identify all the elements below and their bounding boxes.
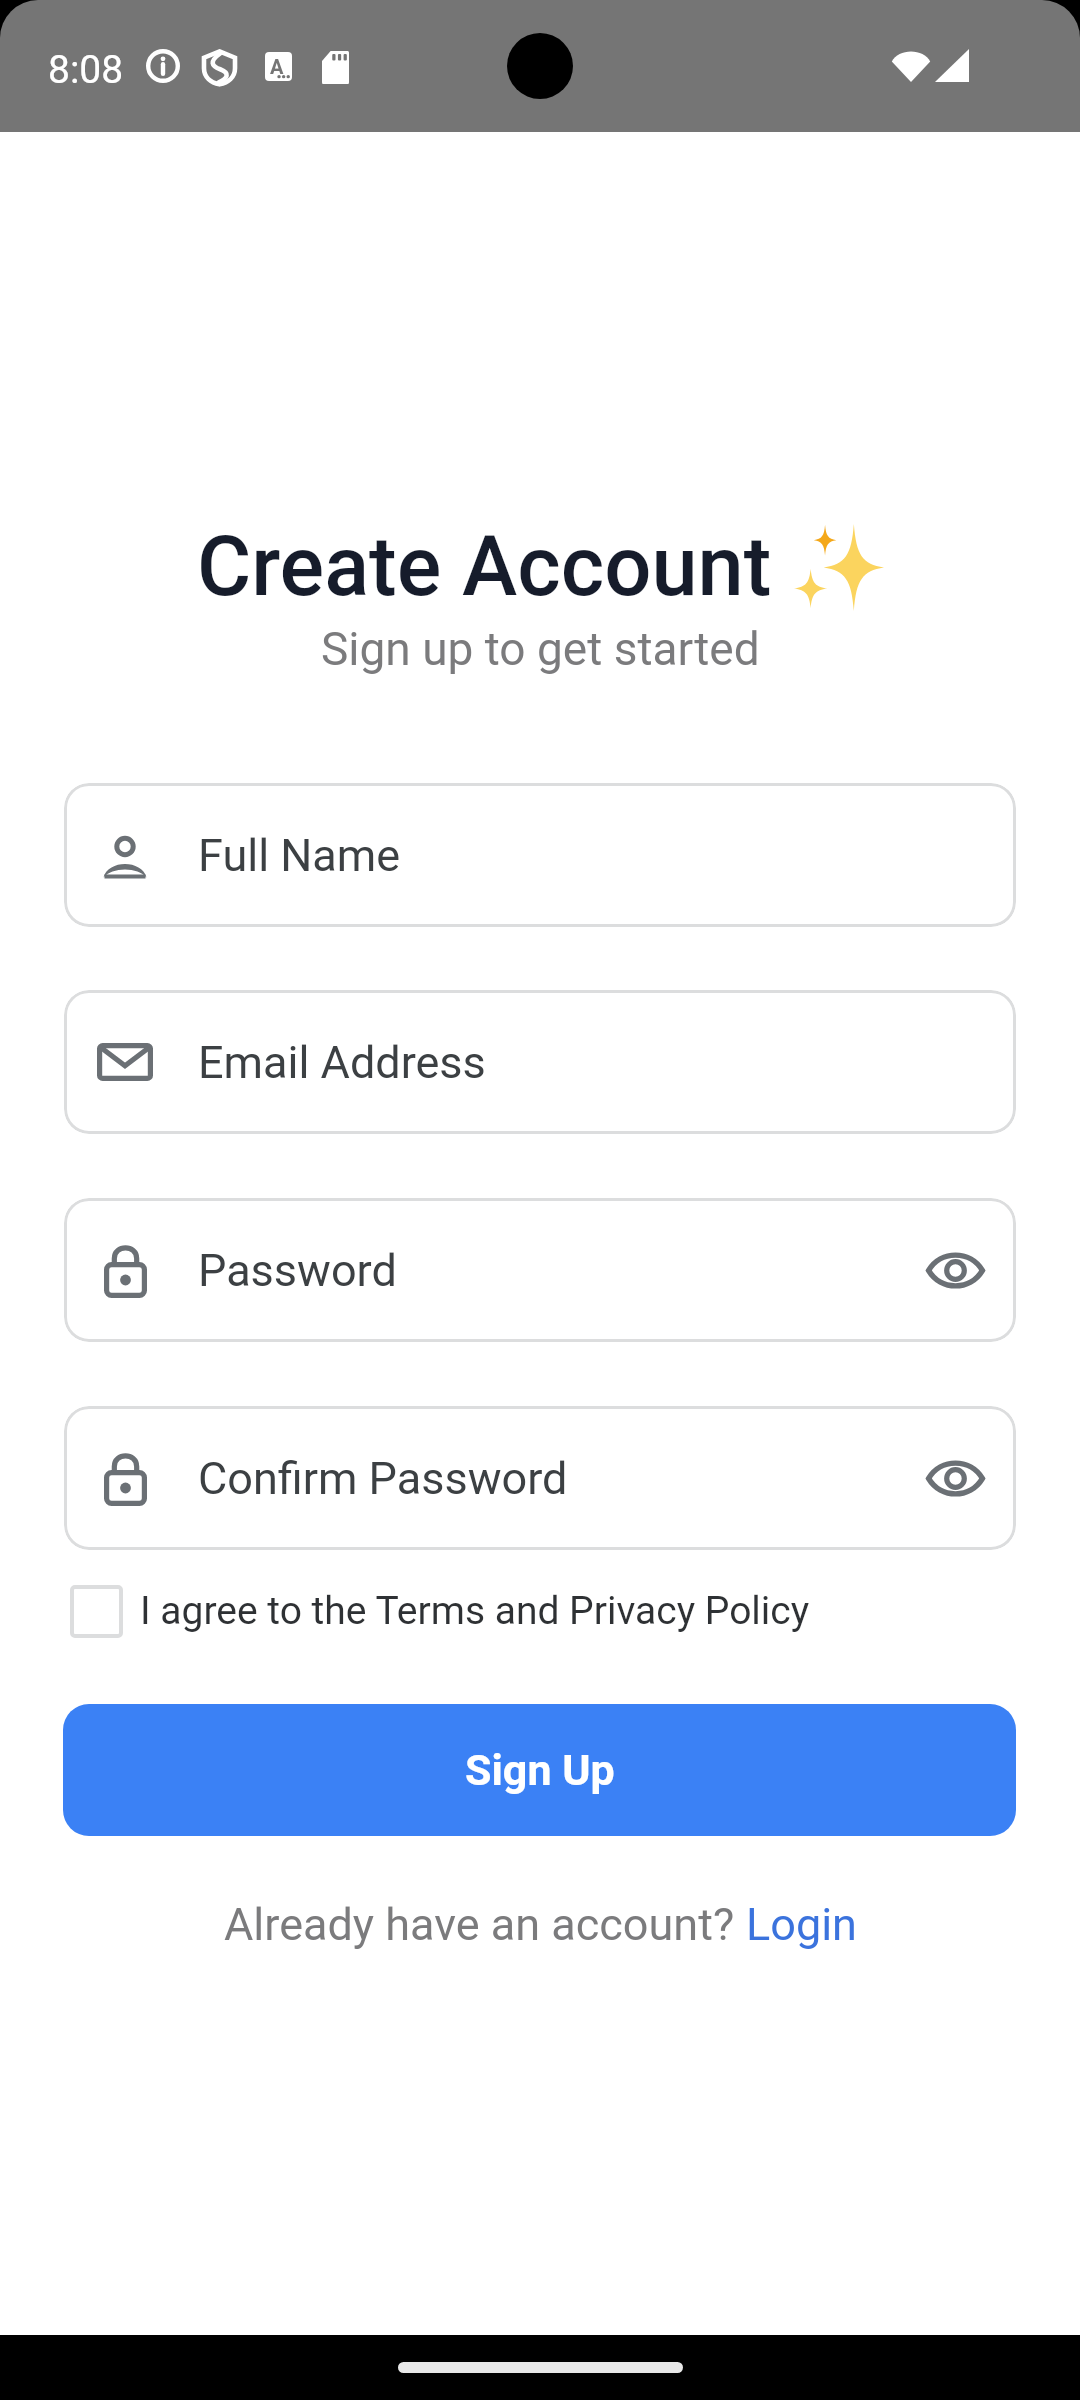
button[interactable]: Show password <box>907 1430 1003 1526</box>
staticText: Full Name <box>198 829 401 882</box>
staticText: Confirm Password <box>198 1452 568 1505</box>
staticText: I agree to the Terms and Privacy Policy <box>140 1588 810 1634</box>
staticText: Already have an account? <box>224 1898 746 1951</box>
staticText: Create Account <box>197 518 772 615</box>
button[interactable]: Email Address <box>64 990 1016 1134</box>
button[interactable]: Confirm Password <box>64 1406 1016 1550</box>
button[interactable]: Full Name <box>64 783 1016 927</box>
staticText: Login <box>746 1898 857 1951</box>
staticText: Email Address <box>198 1036 486 1089</box>
staticText: Password <box>198 1244 397 1297</box>
button[interactable]: Show password <box>907 1222 1003 1318</box>
button[interactable]: Password <box>64 1198 1016 1342</box>
staticText: 8:08 <box>48 47 124 93</box>
staticText: A <box>270 55 284 78</box>
button[interactable]: I agree to the Terms and Privacy Policy <box>64 1576 924 1646</box>
staticText: Sign up to get started <box>321 622 760 676</box>
button[interactable]: Login <box>746 1898 857 1951</box>
button[interactable]: Sign Up <box>63 1704 1016 1836</box>
staticText: Sign Up <box>465 1745 615 1795</box>
